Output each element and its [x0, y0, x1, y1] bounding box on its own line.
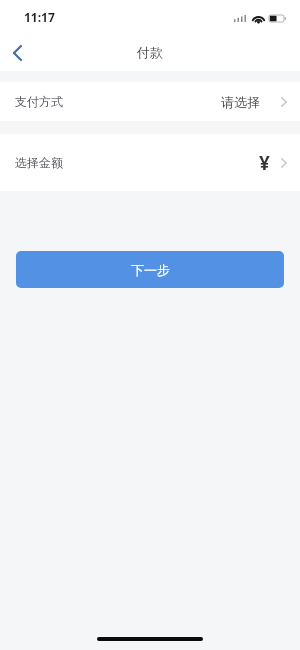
staticText: 付款	[137, 44, 163, 60]
staticText: ¥	[259, 150, 270, 176]
staticText: 选择金额	[15, 155, 63, 170]
staticText: 支付方式	[15, 94, 63, 109]
button[interactable]: Back	[0, 34, 35, 71]
button[interactable]: 支付方式	[0, 82, 300, 121]
staticText: 11:17	[24, 9, 55, 25]
staticText: 下一步	[131, 262, 170, 278]
button[interactable]: 下一步	[16, 251, 284, 288]
button[interactable]: 选择金额	[0, 134, 300, 191]
staticText: 请选择	[221, 94, 260, 110]
